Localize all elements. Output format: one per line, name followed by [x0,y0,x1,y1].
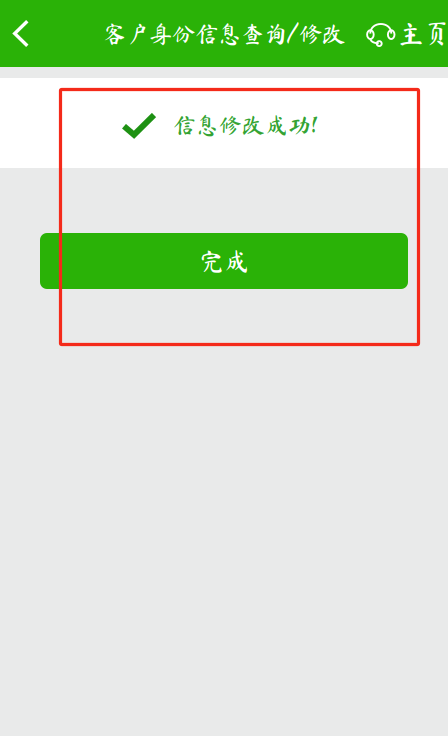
button[interactable]: 主页 [367,0,448,67]
staticText: 完成 [199,248,249,274]
staticText: 信息修改成功! [173,114,317,136]
button[interactable]: 完成 [0,233,448,289]
button[interactable]: Back [0,0,56,67]
staticText: 客户身份信息查询/修改 [103,22,345,45]
staticText: 主页 [398,20,448,46]
